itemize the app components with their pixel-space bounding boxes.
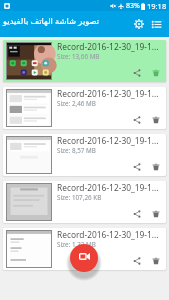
button[interactable]: Delete: [148, 65, 164, 81]
button[interactable]: Sort list: [146, 14, 166, 34]
staticText: Record-2016-12-30_19-1...: [57, 41, 159, 52]
staticText: Record-2016-12-30_19-1...: [57, 88, 159, 99]
staticText: Record-2016-12-30_19-1...: [57, 182, 159, 193]
staticText: Size: 13,66 MB: [57, 52, 100, 61]
button[interactable]: Record-2016-12-30_19-1...: [3, 40, 166, 82]
staticText: 83%: [126, 1, 140, 11]
button[interactable]: Share: [129, 253, 145, 269]
button[interactable]: Record-2016-12-30_19-1...: [3, 228, 166, 270]
staticText: 19:18: [147, 1, 167, 11]
button[interactable]: Delete: [148, 159, 164, 175]
button[interactable]: Delete: [148, 206, 164, 222]
button[interactable]: Share: [129, 159, 145, 175]
button[interactable]: Share: [129, 65, 145, 81]
staticText: Record-2016-12-30_19-1...: [57, 135, 159, 146]
button[interactable]: Settings: [128, 13, 150, 35]
button[interactable]: Record-2016-12-30_19-1...: [3, 181, 166, 223]
staticText: تصوير شاشة الهاتف بالفيديو: [3, 15, 100, 26]
staticText: Size: 2,46 MB: [57, 99, 96, 108]
staticText: Size: 107,26 KB: [57, 193, 102, 202]
button[interactable]: Share: [129, 112, 145, 128]
button[interactable]: Record video: [70, 244, 98, 272]
button[interactable]: Record-2016-12-30_19-1...: [3, 87, 166, 129]
button[interactable]: Delete: [148, 112, 164, 128]
staticText: Record-2016-12-30_19-1...: [57, 229, 159, 240]
staticText: Size: 8,57 MB: [57, 146, 96, 155]
button[interactable]: Delete: [148, 253, 164, 269]
staticText: Size: 1,32 MB: [57, 240, 96, 249]
button[interactable]: Share: [129, 206, 145, 222]
button[interactable]: Record-2016-12-30_19-1...: [3, 134, 166, 176]
